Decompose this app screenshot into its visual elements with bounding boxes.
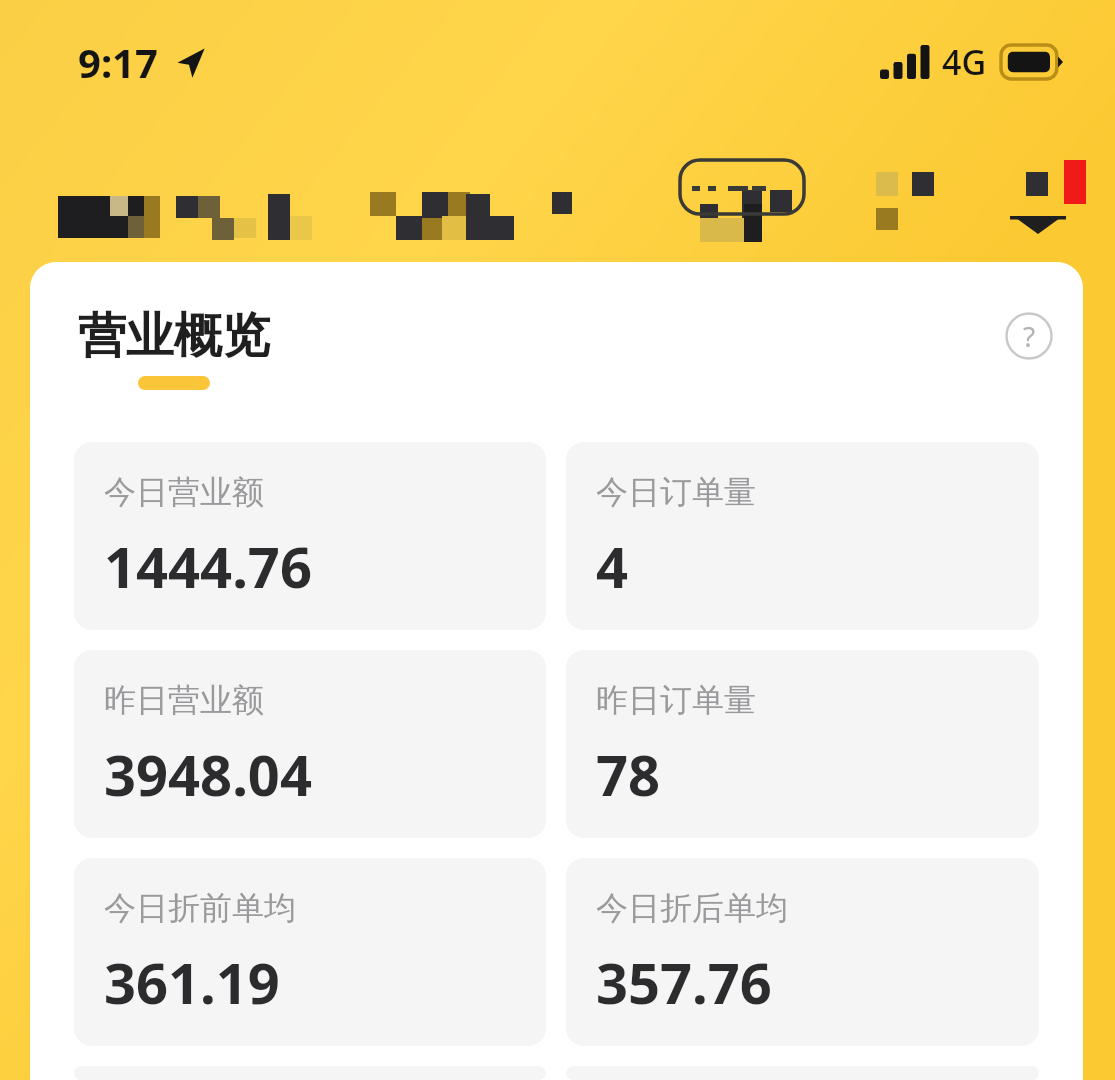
staticText: 今日营业额 xyxy=(104,472,264,512)
staticText: 今日折后单均 xyxy=(596,888,788,928)
staticText: 78 xyxy=(596,736,661,812)
staticText: 4G xyxy=(942,39,987,85)
button[interactable]: 帮助 xyxy=(1003,310,1055,362)
button[interactable]: 昨日订单量 xyxy=(566,650,1039,838)
button[interactable]: 昨日营业额 xyxy=(74,650,546,838)
staticText: 今日折前单均 xyxy=(104,888,296,928)
staticText: 9:17 xyxy=(78,35,158,89)
staticText: 昨日营业额 xyxy=(104,680,264,720)
button[interactable]: 今日折前单均 xyxy=(74,858,546,1046)
staticText: 357.76 xyxy=(596,944,772,1020)
button[interactable]: 今日折后单均 xyxy=(566,858,1039,1046)
button[interactable]: 今日营业额 xyxy=(74,442,546,630)
staticText: 4 xyxy=(596,528,629,604)
staticText: 今日订单量 xyxy=(596,472,756,512)
button[interactable]: 今日订单量 xyxy=(566,442,1039,630)
staticText: 昨日订单量 xyxy=(596,680,756,720)
staticText: 3948.04 xyxy=(104,736,312,812)
staticText: 361.19 xyxy=(104,944,280,1020)
staticText: 营业概览 xyxy=(78,306,270,366)
staticText: 1444.76 xyxy=(104,528,312,604)
staticText: ? xyxy=(1023,317,1036,355)
